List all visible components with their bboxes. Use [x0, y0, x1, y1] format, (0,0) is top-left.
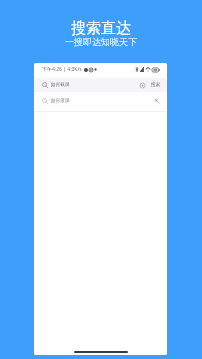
- button[interactable]: 如何截屏: [34, 78, 167, 92]
- staticText: 如何录屏: [51, 98, 70, 104]
- staticText: 搜索直达: [71, 19, 131, 38]
- staticText: 一搜即达知晓天下: [65, 36, 137, 47]
- staticText: 搜索: [151, 82, 161, 88]
- button[interactable]: 如何录屏: [34, 91, 167, 111]
- other: Voice search: [140, 83, 145, 88]
- staticText: 下午4:26 | 4.0K/s: [42, 66, 82, 73]
- staticText: 如何截屏: [51, 82, 70, 88]
